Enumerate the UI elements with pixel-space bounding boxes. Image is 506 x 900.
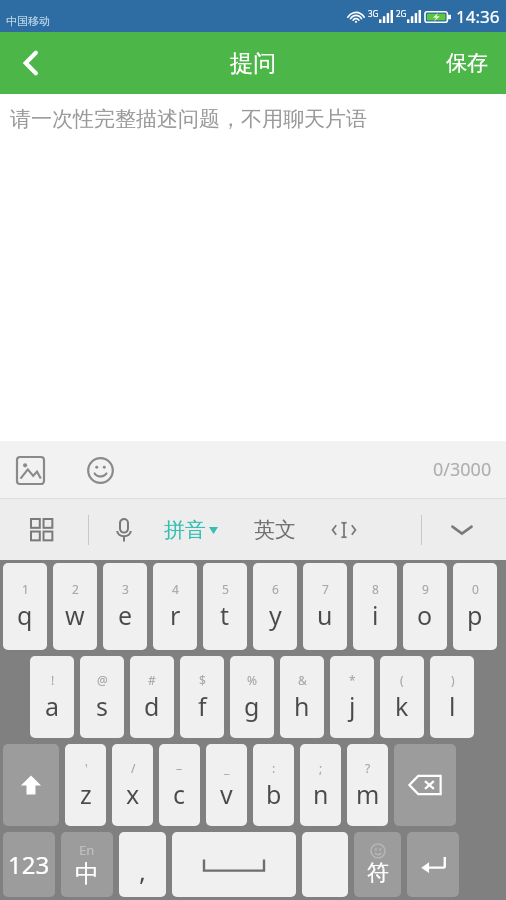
staticText: 123 (8, 848, 50, 881)
staticText: _ (224, 760, 230, 776)
staticText: 3 (122, 581, 129, 597)
staticText: k (395, 689, 409, 723)
button[interactable]: 3 (103, 563, 147, 650)
staticText: 6 (272, 581, 279, 597)
staticText: 请一次性完整描述问题，不用聊天片语 (10, 106, 367, 132)
staticText: 7 (322, 581, 329, 597)
button[interactable]: * (330, 656, 374, 738)
button[interactable]: @ (80, 656, 124, 738)
staticText: 符 (367, 859, 389, 887)
button[interactable]: 4 (153, 563, 197, 650)
button[interactable]: ! (30, 656, 74, 738)
button[interactable]: ? (347, 744, 388, 826)
button[interactable]: 9 (403, 563, 447, 650)
staticText: 保存 (446, 50, 488, 76)
button[interactable]: En (61, 832, 113, 897)
staticText: s (96, 689, 108, 723)
staticText: o (417, 598, 433, 632)
button[interactable]: 123 (3, 832, 55, 897)
staticText: m (356, 777, 380, 811)
staticText: $ (199, 672, 206, 688)
staticText: h (294, 689, 310, 723)
other: Enter (419, 854, 447, 876)
staticText: 3G (368, 8, 379, 19)
button[interactable]: ; (300, 744, 341, 826)
staticText: ; (319, 760, 323, 776)
staticText: ) (451, 672, 455, 688)
staticText: @ (97, 672, 108, 688)
button[interactable]: Keyboard layouts (18, 506, 66, 554)
button[interactable]: $ (180, 656, 224, 738)
button[interactable]: 拼音 (158, 517, 224, 543)
staticText: 4 (172, 581, 179, 597)
other: Backspace (408, 773, 442, 797)
button[interactable]: Space (172, 832, 296, 897)
staticText: 英文 (254, 517, 296, 543)
button[interactable]: 0 (453, 563, 497, 650)
button[interactable]: ' (65, 744, 106, 826)
staticText: y (269, 598, 282, 632)
staticText: u (317, 598, 333, 632)
button[interactable]: Enter (407, 832, 459, 897)
button[interactable]: # (130, 656, 174, 738)
button[interactable]: / (112, 744, 153, 826)
button[interactable]: 8 (353, 563, 397, 650)
staticText: q (17, 598, 33, 632)
button[interactable]: ( (380, 656, 424, 738)
staticText: i (372, 598, 379, 632)
staticText: j (349, 689, 356, 723)
button[interactable]: 英文 (248, 517, 302, 543)
staticText: r (170, 598, 181, 632)
staticText: 14:36 (456, 5, 500, 28)
button[interactable]: 保存 (428, 32, 506, 94)
button[interactable]: , (119, 832, 166, 897)
staticText: , (139, 853, 146, 888)
staticText: g (244, 689, 260, 723)
staticText: 0/3000 (433, 457, 492, 482)
button[interactable]: : (253, 744, 294, 826)
staticText: 5 (222, 581, 229, 597)
staticText: v (220, 777, 233, 811)
staticText: & (298, 672, 307, 688)
staticText: ! (51, 672, 55, 688)
staticText: * (349, 672, 356, 688)
button[interactable]: Add image (8, 448, 52, 492)
staticText: ( (400, 672, 404, 688)
button[interactable]: Emoji (78, 448, 122, 492)
button[interactable]: Shift (3, 744, 59, 826)
staticText: : (272, 760, 276, 776)
staticText: 中 (75, 859, 99, 889)
staticText: l (449, 689, 456, 723)
button[interactable]: 符 (354, 832, 401, 897)
button[interactable]: 7 (303, 563, 347, 650)
button[interactable]: 1 (3, 563, 47, 650)
button[interactable]: 2 (53, 563, 97, 650)
button[interactable]: % (230, 656, 274, 738)
staticText: ' (85, 760, 88, 776)
button[interactable]: ) (430, 656, 474, 738)
button[interactable]: 6 (253, 563, 297, 650)
button[interactable]: Move cursor (324, 510, 364, 550)
staticText: # (148, 672, 156, 688)
staticText: 2 (72, 581, 79, 597)
staticText: d (144, 689, 160, 723)
staticText: 9 (422, 581, 429, 597)
button[interactable]: 5 (203, 563, 247, 650)
button[interactable]: Hide keyboard (438, 506, 486, 554)
staticText: t (220, 598, 230, 632)
button[interactable]: Voice input (100, 506, 148, 554)
staticText: 提问 (230, 49, 276, 78)
button[interactable]: – (159, 744, 200, 826)
staticText: 0 (472, 581, 479, 597)
button[interactable] (302, 832, 348, 897)
button[interactable]: Backspace (394, 744, 456, 826)
button[interactable]: Back (0, 32, 62, 94)
staticText: n (313, 777, 329, 811)
staticText: 1 (22, 581, 29, 597)
staticText: 2G (396, 8, 407, 19)
button[interactable]: _ (206, 744, 247, 826)
button[interactable]: & (280, 656, 324, 738)
staticText: % (247, 672, 257, 688)
staticText: b (266, 777, 282, 811)
staticText: p (467, 598, 483, 632)
